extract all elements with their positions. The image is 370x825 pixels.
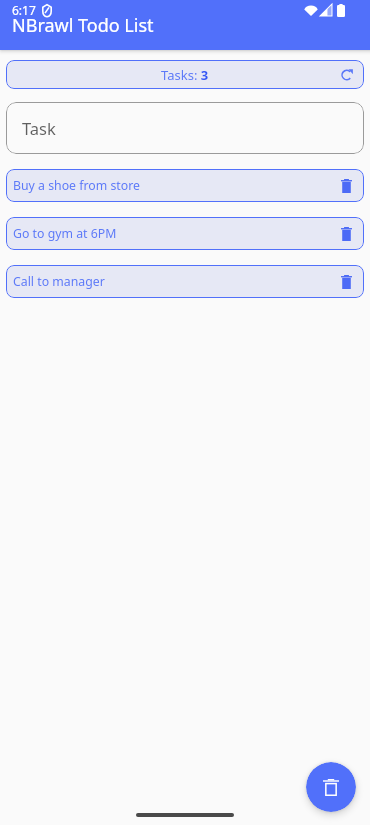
staticText: Buy a shoe from store bbox=[13, 177, 140, 194]
button[interactable]: Refresh bbox=[338, 66, 356, 84]
button[interactable]: Delete all tasks bbox=[306, 762, 356, 812]
button[interactable]: Delete task bbox=[336, 176, 356, 196]
button[interactable]: Buy a shoe from store bbox=[6, 169, 364, 202]
staticText: Task bbox=[22, 117, 56, 139]
staticText: 6:17 bbox=[12, 2, 36, 18]
button[interactable]: Go to gym at 6PM bbox=[6, 217, 364, 250]
button[interactable]: Delete task bbox=[336, 272, 356, 292]
staticText: Go to gym at 6PM bbox=[13, 225, 117, 242]
staticText: NBrawl Todo List bbox=[12, 13, 154, 38]
button[interactable]: Call to manager bbox=[6, 265, 364, 298]
button[interactable]: Task bbox=[6, 102, 364, 154]
button[interactable]: Delete task bbox=[336, 224, 356, 244]
staticText: Call to manager bbox=[13, 273, 105, 290]
staticText: Tasks: 3 bbox=[161, 66, 209, 84]
